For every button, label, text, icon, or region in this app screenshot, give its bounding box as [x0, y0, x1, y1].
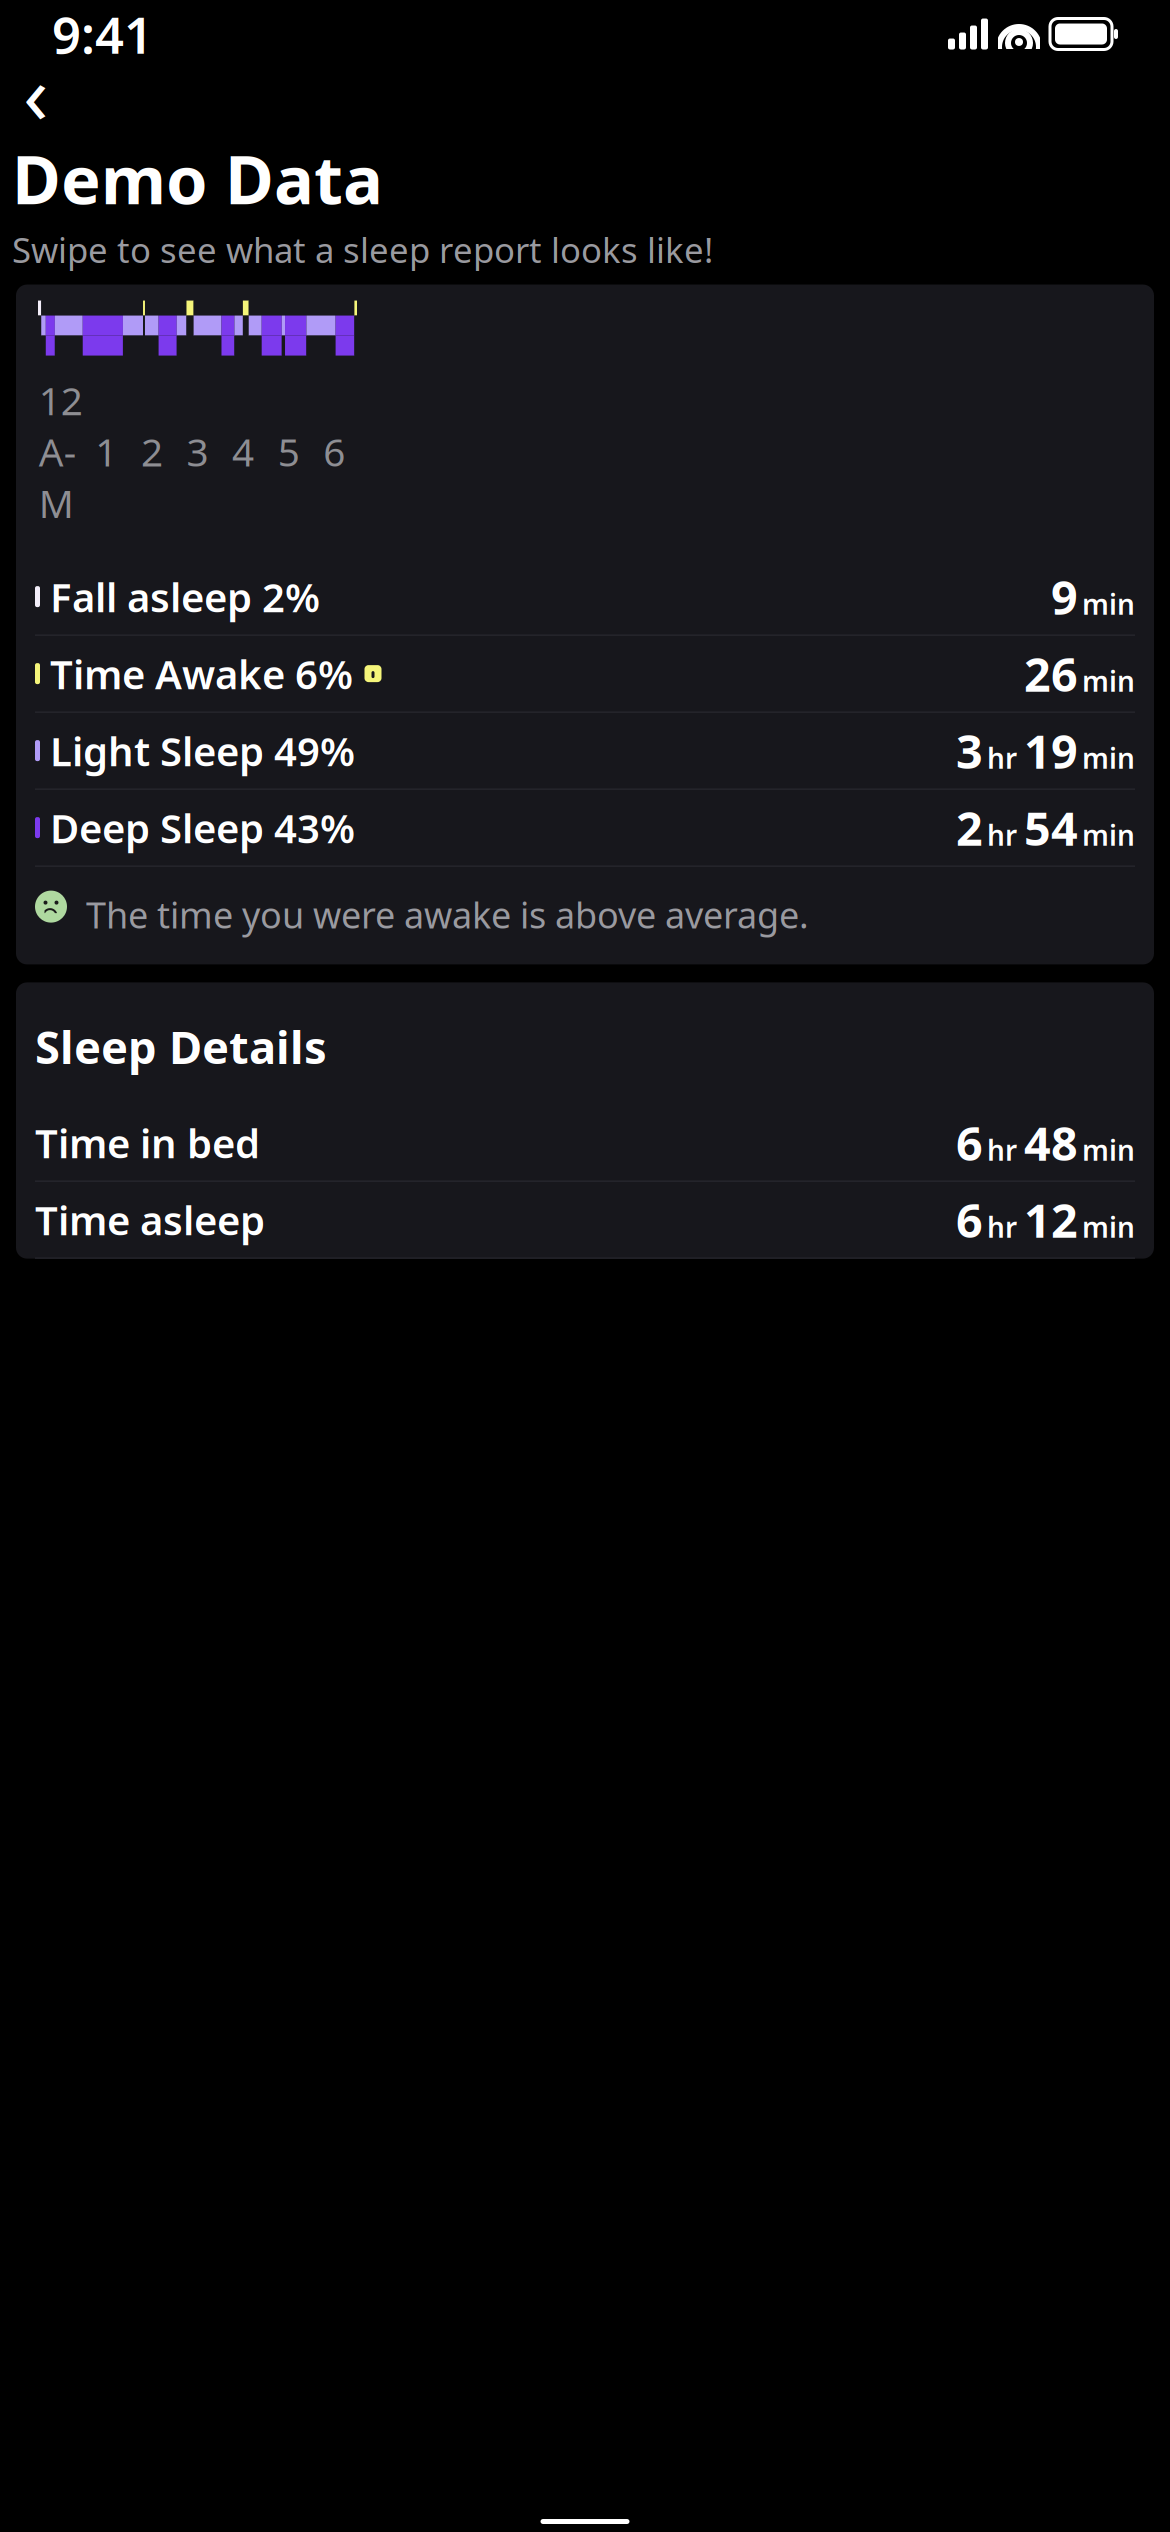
staticText: hr	[987, 1131, 1017, 1168]
staticText: min	[1082, 739, 1135, 776]
staticText: Swipe to see what a sleep report looks l…	[12, 226, 713, 272]
staticText: 2	[956, 797, 983, 859]
staticText: Sleep Details	[35, 1016, 327, 1077]
staticText: min	[1082, 816, 1135, 853]
staticText: 2	[141, 426, 163, 477]
staticText: 26	[1024, 643, 1078, 705]
staticText: hr	[987, 1208, 1017, 1245]
staticText: 1	[95, 426, 117, 477]
staticText: 48	[1024, 1112, 1078, 1174]
staticText: 12	[1024, 1189, 1078, 1251]
staticText: ‹	[23, 37, 49, 147]
staticText: 6	[956, 1189, 983, 1251]
staticText: Time asleep	[35, 1193, 265, 1246]
staticText: min	[1082, 1131, 1135, 1168]
staticText: 4	[232, 426, 254, 477]
staticText: The time you were awake is above average…	[86, 891, 809, 938]
staticText: 5	[278, 426, 300, 477]
button[interactable]: Back	[12, 68, 60, 116]
staticText: min	[1082, 1208, 1135, 1245]
staticText: hr	[987, 816, 1017, 853]
staticText: 9	[1051, 566, 1078, 628]
staticText: Time Awake 6%	[50, 647, 353, 700]
staticText: min	[1082, 585, 1135, 622]
staticText: Demo Data	[12, 134, 383, 222]
staticText: Deep Sleep 43%	[50, 801, 355, 854]
staticText: Fall asleep 2%	[50, 570, 320, 623]
staticText: hr	[987, 739, 1017, 776]
staticText: 19	[1024, 720, 1078, 782]
staticText: 54	[1024, 797, 1078, 859]
staticText: 6	[956, 1112, 983, 1174]
staticText: min	[1082, 662, 1135, 699]
staticText: 12AM	[39, 375, 83, 529]
staticText: Time in bed	[35, 1116, 260, 1169]
staticText: 3	[186, 426, 208, 477]
staticText: Light Sleep 49%	[50, 724, 355, 777]
staticText: 6	[323, 426, 345, 477]
staticText: 9:41	[52, 0, 153, 68]
staticText: 3	[956, 720, 983, 782]
